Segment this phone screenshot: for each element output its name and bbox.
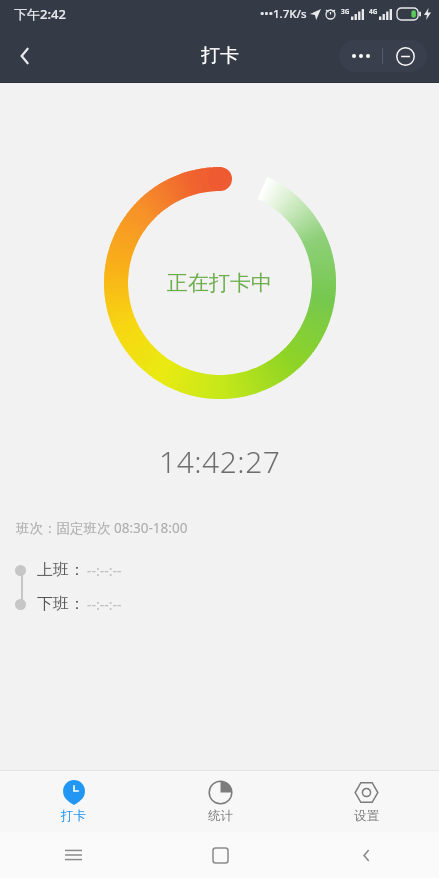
button[interactable]: 上班： bbox=[0, 559, 439, 581]
staticText: --:--:-- bbox=[87, 561, 122, 580]
button[interactable]: More options bbox=[339, 40, 382, 72]
staticText: 3G bbox=[341, 7, 350, 16]
staticText: 打卡 bbox=[201, 44, 239, 68]
staticText: 下班： bbox=[37, 594, 85, 614]
button[interactable]: Home bbox=[147, 832, 293, 878]
staticText: •••1.7K/s bbox=[260, 6, 307, 22]
button[interactable]: Minimize bbox=[383, 40, 427, 72]
button[interactable]: Back bbox=[0, 31, 50, 81]
staticText: 4G bbox=[369, 7, 378, 16]
button[interactable]: Back bbox=[293, 832, 439, 878]
staticText: 上班： bbox=[37, 560, 85, 580]
staticText: 设置 bbox=[354, 808, 379, 824]
staticText: 打卡 bbox=[61, 808, 86, 824]
staticText: 正在打卡中 bbox=[167, 270, 272, 296]
button[interactable]: 统计 bbox=[147, 771, 293, 832]
button[interactable]: Recents bbox=[0, 832, 147, 878]
staticText: --:--:-- bbox=[87, 595, 122, 614]
button[interactable]: 设置 bbox=[293, 771, 439, 832]
staticText: 14:42:27 bbox=[159, 441, 281, 482]
staticText: 下午2:42 bbox=[14, 5, 66, 23]
button[interactable]: 下班： bbox=[0, 593, 439, 615]
staticText: 班次：固定班次 08:30-18:00 bbox=[16, 519, 188, 537]
staticText: 统计 bbox=[208, 808, 233, 824]
button[interactable]: 打卡 bbox=[0, 771, 147, 832]
